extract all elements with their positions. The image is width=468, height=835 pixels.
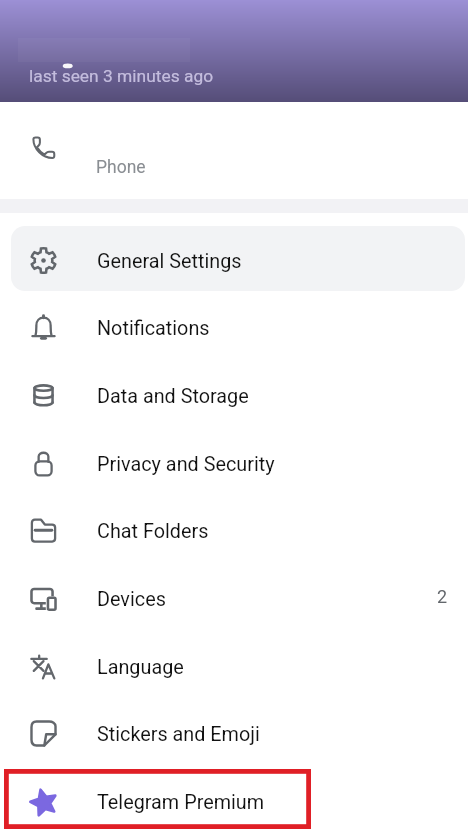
button[interactable]: Phone number: [0, 102, 468, 199]
button[interactable]: Devices: [11, 564, 465, 629]
button[interactable]: Notifications: [11, 293, 465, 358]
staticText: 2: [437, 586, 448, 607]
staticText: Notifications: [97, 317, 210, 340]
staticText: Telegram Premium: [97, 791, 265, 814]
staticText: Chat Folders: [97, 520, 209, 543]
button[interactable]: Data and Storage: [11, 361, 465, 426]
button[interactable]: General Settings: [11, 226, 465, 291]
staticText: General Settings: [97, 250, 242, 273]
other: Phone number: [31, 135, 55, 159]
button[interactable]: Telegram Premium: [11, 767, 465, 832]
staticText: Devices: [97, 588, 166, 611]
button[interactable]: Chat Folders: [11, 496, 465, 561]
staticText: last seen 3 minutes ago: [29, 66, 214, 86]
staticText: Stickers and Emoji: [97, 723, 260, 746]
staticText: Privacy and Security: [97, 453, 275, 476]
button[interactable]: Privacy and Security: [11, 429, 465, 494]
staticText: Data and Storage: [97, 385, 249, 408]
button[interactable]: Stickers and Emoji: [11, 699, 465, 764]
staticText: Language: [97, 656, 184, 679]
button[interactable]: Language: [11, 632, 465, 697]
staticText: Phone: [96, 157, 146, 178]
